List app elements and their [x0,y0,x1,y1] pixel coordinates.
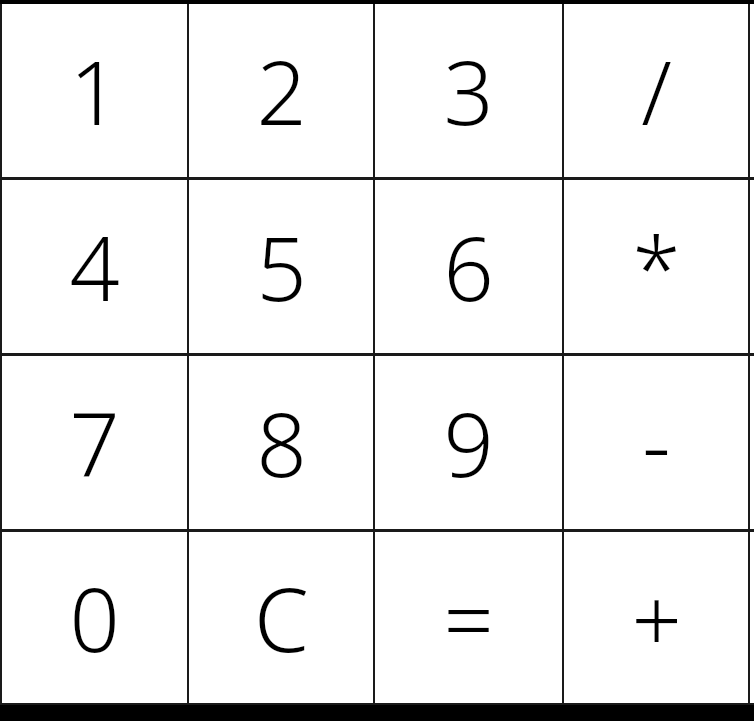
staticText: 7 [69,383,120,503]
staticText: C [254,558,309,678]
button[interactable]: 0 [2,532,187,703]
staticText: 3 [443,31,494,151]
button[interactable]: 1 [2,4,187,177]
staticText: 8 [256,383,307,503]
button[interactable]: / [564,4,748,177]
staticText: = [443,558,494,678]
staticText: 2 [256,31,307,151]
staticText: + [631,558,682,678]
button[interactable]: * [564,180,748,353]
button[interactable]: = [375,532,562,703]
button[interactable]: 6 [375,180,562,353]
button[interactable]: 4 [2,180,187,353]
staticText: 5 [256,207,307,327]
staticText: 9 [443,383,494,503]
staticText: 1 [69,31,120,151]
staticText: 4 [69,207,120,327]
button[interactable]: 5 [189,180,373,353]
staticText: 0 [69,558,120,678]
staticText: - [642,383,671,503]
button[interactable]: + [564,532,748,703]
button[interactable]: 7 [2,356,187,529]
staticText: 6 [443,207,494,327]
button[interactable]: C [189,532,373,703]
staticText: * [632,207,681,327]
button[interactable]: 2 [189,4,373,177]
staticText: / [641,31,672,151]
button[interactable]: - [564,356,748,529]
button[interactable]: 3 [375,4,562,177]
button[interactable]: 9 [375,356,562,529]
button[interactable]: 8 [189,356,373,529]
